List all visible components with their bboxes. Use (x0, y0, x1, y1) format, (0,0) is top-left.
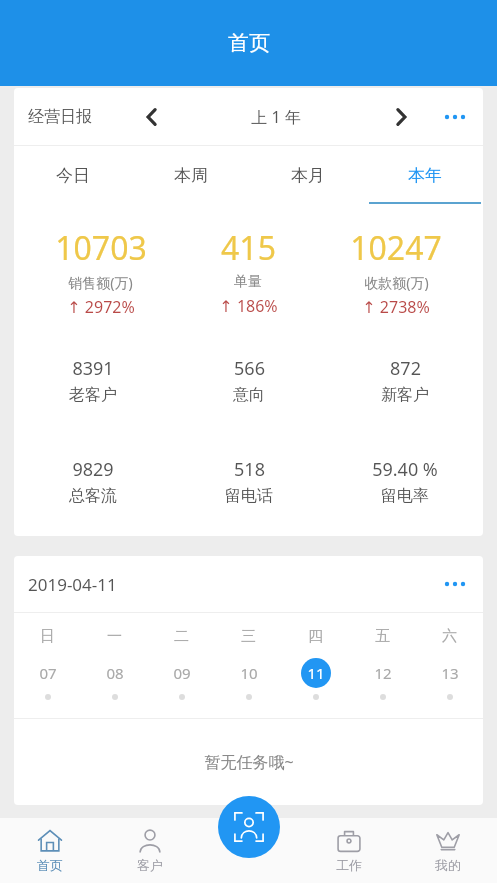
staticText: 本年 (408, 165, 442, 186)
button[interactable]: 我的 (398, 818, 497, 883)
button[interactable]: More options (437, 99, 473, 135)
button[interactable]: More options (435, 564, 475, 604)
staticText: 总客流 (69, 486, 117, 506)
staticText: 留电率 (381, 486, 429, 506)
button[interactable]: 10 (215, 658, 282, 700)
staticText: 三 (241, 627, 256, 646)
staticText: 13 (441, 663, 459, 683)
staticText: 日 (40, 627, 55, 646)
staticText: 老客户 (69, 385, 117, 405)
staticText: 872 (390, 356, 421, 381)
staticText: ↑ 2972% (67, 296, 135, 318)
staticText: 工作 (336, 857, 362, 873)
staticText: 08 (106, 663, 124, 683)
staticText: ↑ 186% (219, 295, 278, 317)
staticText: 收款额(万) (364, 273, 429, 292)
button[interactable]: 9829 (14, 457, 171, 506)
button[interactable]: 08 (81, 658, 148, 700)
button[interactable]: 59.40 % (327, 457, 483, 506)
button[interactable]: 2019-04-11 (14, 556, 483, 612)
staticText: 首页 (228, 30, 270, 56)
button[interactable]: 8391 (14, 356, 171, 405)
staticText: 9829 (72, 457, 114, 482)
staticText: 二 (174, 627, 189, 646)
staticText: 09 (173, 663, 191, 683)
button[interactable]: 本年 (366, 146, 483, 204)
staticText: 销售额(万) (68, 273, 133, 292)
button[interactable]: 经营日报 (14, 88, 483, 145)
staticText: 2019-04-11 (28, 573, 117, 596)
staticText: 今日 (56, 165, 90, 186)
staticText: 经营日报 (28, 107, 92, 127)
staticText: 07 (39, 663, 57, 683)
staticText: 首页 (37, 857, 63, 873)
staticText: 518 (234, 457, 265, 482)
staticText: 415 (221, 226, 276, 270)
staticText: 意向 (233, 385, 265, 405)
button[interactable]: 566 (171, 356, 327, 405)
staticText: 四 (308, 627, 323, 646)
button[interactable]: 11 (282, 658, 349, 700)
staticText: 上 1 年 (251, 106, 301, 128)
button[interactable]: 本周 (132, 146, 249, 204)
staticText: 暂无任务哦~ (204, 751, 294, 773)
button[interactable]: 工作 (299, 818, 398, 883)
staticText: 566 (234, 356, 265, 381)
staticText: ↑ 2738% (362, 296, 430, 318)
button[interactable]: 07 (14, 658, 81, 700)
staticText: 10247 (350, 226, 442, 270)
button[interactable]: 本月 (249, 146, 366, 204)
button[interactable]: Scan customer (218, 796, 280, 858)
button[interactable]: Previous period (134, 99, 170, 135)
staticText: 12 (374, 663, 392, 683)
staticText: 留电话 (225, 486, 273, 506)
button[interactable]: 12 (349, 658, 416, 700)
staticText: 11 (307, 663, 325, 683)
staticText: 新客户 (381, 385, 429, 405)
staticText: 10 (240, 663, 258, 683)
button[interactable]: 518 (171, 457, 327, 506)
button[interactable]: 09 (148, 658, 215, 700)
staticText: 一 (107, 627, 122, 646)
staticText: 10703 (55, 226, 147, 270)
button[interactable]: 首页 (0, 818, 100, 883)
staticText: 客户 (137, 857, 163, 873)
button[interactable]: 13 (416, 658, 483, 700)
staticText: 五 (375, 627, 390, 646)
staticText: 单量 (234, 273, 262, 291)
button[interactable]: 客户 (100, 818, 200, 883)
staticText: 本周 (174, 165, 208, 186)
button[interactable]: 今日 (14, 146, 132, 204)
staticText: 8391 (72, 356, 114, 381)
staticText: 我的 (435, 857, 461, 873)
staticText: 六 (442, 627, 457, 646)
staticText: 59.40 % (372, 457, 438, 482)
button[interactable]: 872 (327, 356, 483, 405)
staticText: 本月 (291, 165, 325, 186)
button[interactable]: Next period (383, 99, 419, 135)
